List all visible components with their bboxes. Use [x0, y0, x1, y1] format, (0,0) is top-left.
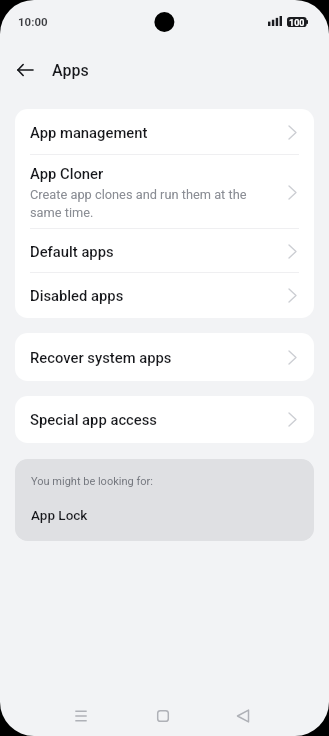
button[interactable]: App Lock: [31, 507, 88, 523]
button[interactable]: Default apps: [15, 229, 314, 273]
staticText: Special app access: [30, 411, 157, 428]
button[interactable]: App Cloner: [15, 155, 314, 229]
staticText: Disabled apps: [30, 287, 124, 304]
staticText: You might be looking for:: [31, 475, 153, 488]
staticText: 10:00: [18, 15, 48, 28]
staticText: App Cloner: [30, 165, 104, 182]
staticText: 100: [289, 18, 305, 29]
staticText: Recover system apps: [30, 349, 172, 366]
staticText: App management: [30, 124, 148, 141]
button[interactable]: Disabled apps: [15, 273, 314, 318]
button[interactable]: Back: [221, 694, 265, 736]
button[interactable]: Recents: [59, 694, 103, 736]
button[interactable]: Recover system apps: [15, 333, 314, 381]
staticText: Create app clones and run them at the sa…: [30, 187, 247, 220]
button[interactable]: Special app access: [15, 396, 314, 443]
staticText: Apps: [52, 61, 89, 80]
button[interactable]: Home: [141, 694, 185, 736]
staticText: Default apps: [30, 243, 114, 260]
button[interactable]: Back: [5, 50, 45, 90]
button[interactable]: App management: [15, 109, 314, 155]
